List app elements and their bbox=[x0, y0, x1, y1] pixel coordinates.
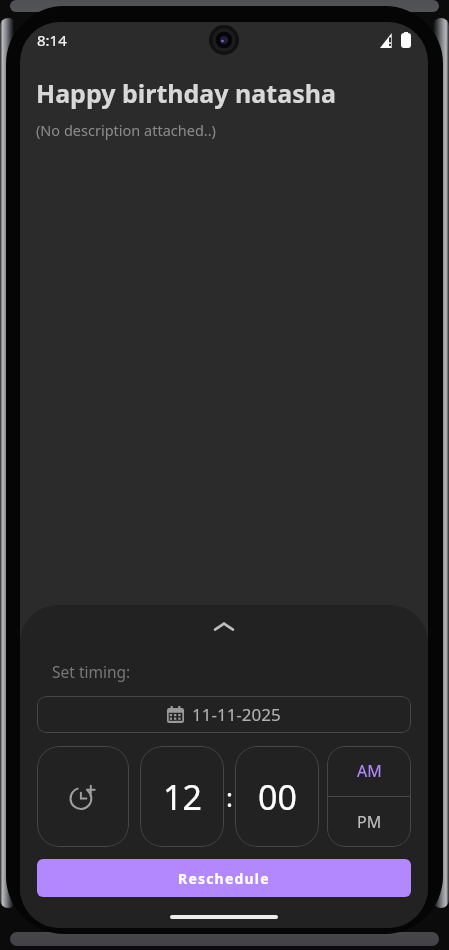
staticText: PM bbox=[357, 811, 382, 833]
button[interactable]: Collapse timing panel bbox=[20, 605, 428, 649]
button[interactable]: AM bbox=[327, 746, 411, 796]
button[interactable]: Reschedule bbox=[37, 859, 411, 897]
button[interactable]: 12 bbox=[140, 746, 224, 847]
button[interactable]: PM bbox=[327, 797, 411, 847]
staticText: Happy birthday natasha bbox=[36, 76, 336, 110]
staticText: Set timing: bbox=[52, 661, 131, 682]
staticText: (No description attached..) bbox=[36, 120, 216, 140]
staticText: 8:14 bbox=[37, 30, 67, 50]
staticText: Reschedule bbox=[178, 869, 270, 888]
staticText: : bbox=[226, 779, 233, 814]
staticText: AM bbox=[357, 760, 382, 782]
staticText: 11-11-2025 bbox=[192, 703, 281, 726]
button[interactable]: 11-11-2025 bbox=[37, 696, 411, 733]
staticText: 00 bbox=[258, 774, 297, 820]
button[interactable]: 00 bbox=[235, 746, 319, 847]
staticText: 12 bbox=[163, 774, 202, 820]
button[interactable]: Add time bbox=[37, 746, 129, 847]
